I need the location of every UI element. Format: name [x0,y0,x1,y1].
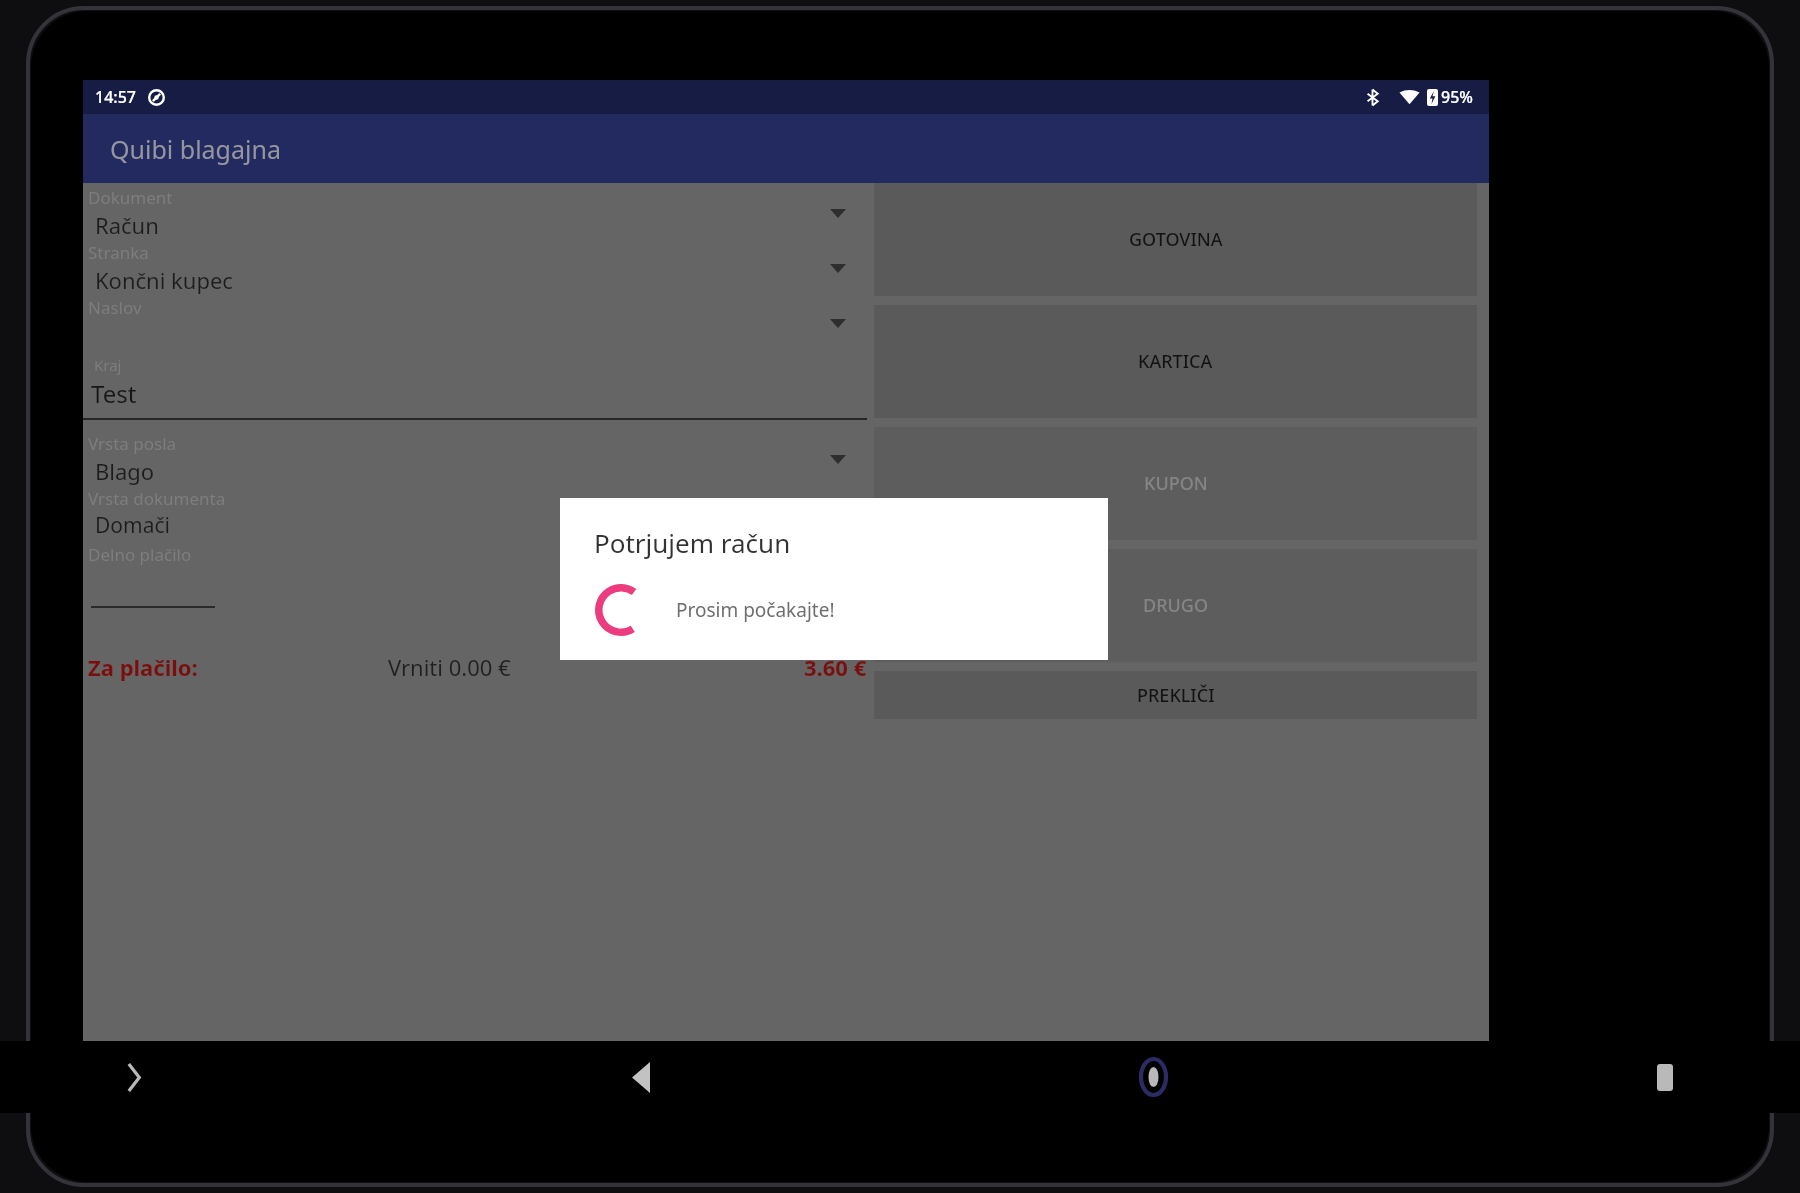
staticText: Dokument [88,186,173,209]
staticText: Potrjujem račun [594,525,791,560]
staticText: Stranka [88,241,149,264]
staticText: 95% [1441,86,1473,108]
button[interactable]: KUPON [874,427,1477,540]
staticText: Domači [95,511,170,540]
button[interactable]: GOTOVINA [874,183,1477,296]
staticText: Končni kupec [95,265,233,295]
button[interactable]: Back [566,1041,716,1113]
button[interactable]: Recent apps [1590,1041,1740,1113]
staticText: Vrsta dokumenta [88,487,226,510]
staticText: Test [91,377,137,410]
staticText: PREKLIČI [1137,683,1215,708]
staticText: Vrsta posla [88,432,177,455]
button[interactable]: Home [1078,1041,1228,1113]
button[interactable]: Stranka [83,241,867,296]
staticText: Naslov [88,296,142,319]
button[interactable]: Vrsta dokumenta [83,487,867,540]
staticText: KARTICA [1138,349,1213,374]
button[interactable]: Hide keyboard [60,1041,205,1113]
staticText: Prosim počakajte! [676,597,835,623]
button[interactable]: KARTICA [874,305,1477,418]
staticText: DRUGO [1143,593,1209,618]
staticText: Delno plačilo [88,543,192,566]
staticText: 3.60 € [804,652,867,682]
staticText: Kraj [94,355,122,375]
button[interactable]: Dokument [83,186,867,241]
button[interactable]: Kraj [83,351,867,420]
button[interactable]: PREKLIČI [874,671,1477,719]
button[interactable]: DRUGO [874,549,1477,662]
button[interactable]: Vrsta posla [83,432,867,487]
staticText: Za plačilo: [88,652,198,682]
staticText: 14:57 [95,86,136,108]
staticText: Blago [95,456,155,486]
staticText: Vrniti 0.00 € [388,652,511,682]
staticText: KUPON [1144,471,1208,496]
staticText: GOTOVINA [1129,227,1223,252]
staticText: Quibi blagajna [110,132,281,166]
staticText: Račun [95,210,159,240]
